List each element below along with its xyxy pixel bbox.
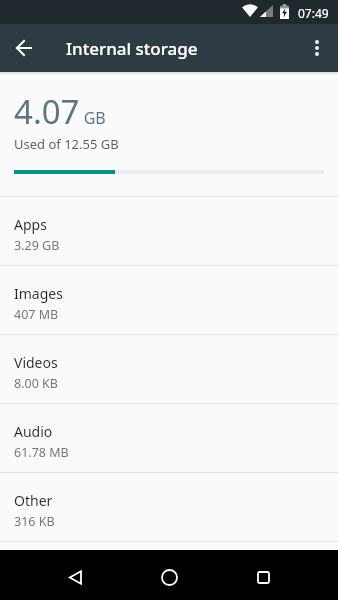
button[interactable]: Other bbox=[0, 472, 338, 541]
staticText: 4.07 GB bbox=[14, 89, 106, 134]
button[interactable] bbox=[296, 24, 338, 72]
staticText: 8.00 KB bbox=[14, 375, 58, 392]
button[interactable]: Images bbox=[0, 265, 338, 334]
button[interactable] bbox=[155, 563, 183, 591]
staticText: Other bbox=[14, 491, 53, 510]
staticText: 407 MB bbox=[14, 306, 59, 323]
button[interactable]: Apps bbox=[0, 196, 338, 265]
staticText: 316 KB bbox=[14, 513, 55, 530]
staticText: Images bbox=[14, 284, 63, 303]
staticText: Internal storage bbox=[66, 37, 198, 60]
button[interactable] bbox=[249, 563, 277, 591]
staticText: 61.78 MB bbox=[14, 444, 69, 461]
staticText: Used of 12.55 GB bbox=[14, 135, 119, 153]
button[interactable]: Audio bbox=[0, 403, 338, 472]
staticText: 3.29 GB bbox=[14, 237, 60, 254]
button[interactable]: Videos bbox=[0, 334, 338, 403]
button[interactable] bbox=[0, 24, 48, 72]
staticText: 07:49 bbox=[298, 5, 329, 21]
staticText: Audio bbox=[14, 422, 53, 441]
button[interactable] bbox=[61, 563, 89, 591]
staticText: Videos bbox=[14, 353, 58, 372]
staticText: Apps bbox=[14, 215, 47, 234]
